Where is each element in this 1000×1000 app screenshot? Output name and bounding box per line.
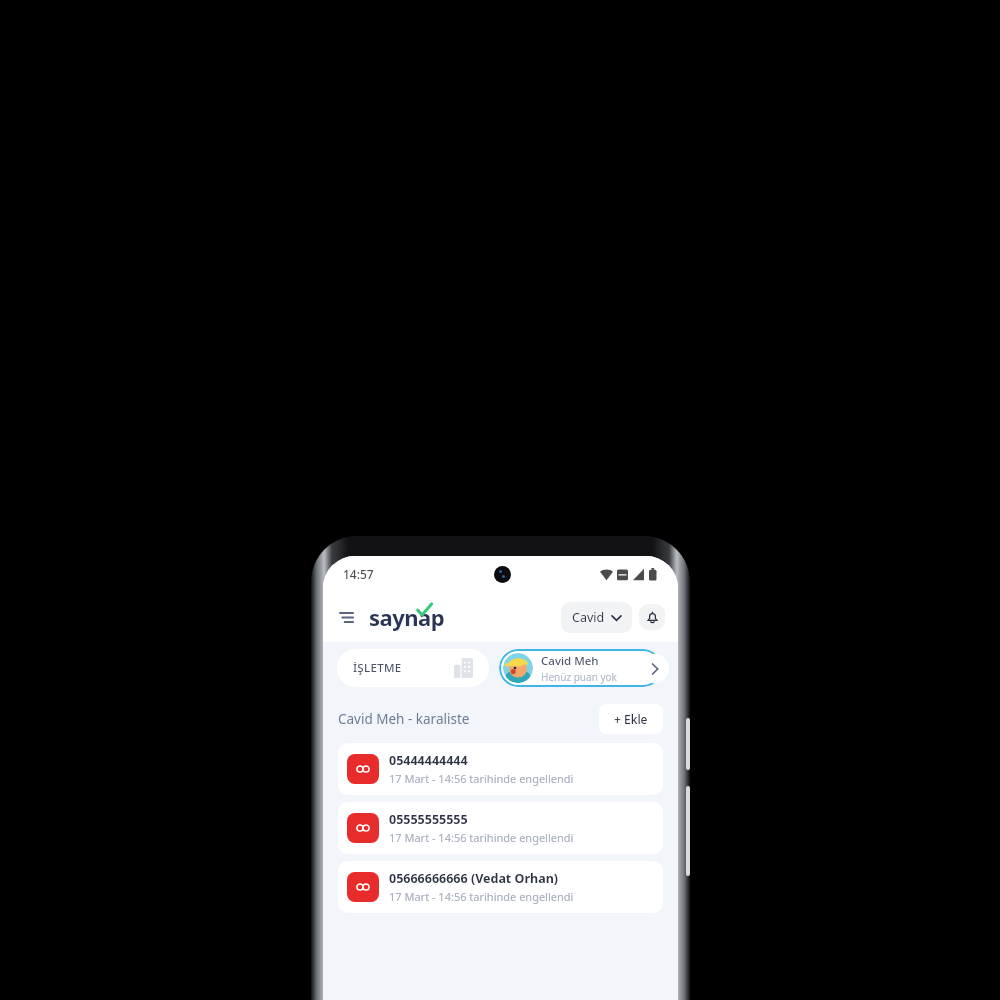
button[interactable]: İŞLETME	[337, 649, 489, 687]
staticText: 17 Mart - 14:56 tarihinde engellendi	[389, 889, 574, 904]
staticText: saynap	[369, 602, 445, 632]
button[interactable]: 05666666666 (Vedat Orhan)	[338, 861, 663, 913]
staticText: 05444444444	[389, 752, 468, 769]
staticText: 17 Mart - 14:56 tarihinde engellendi	[389, 771, 574, 786]
staticText: 17 Mart - 14:56 tarihinde engellendi	[389, 830, 574, 845]
button[interactable]: + Ekle	[599, 704, 663, 734]
button[interactable]: Menu	[336, 608, 357, 627]
staticText: 05555555555	[389, 811, 468, 828]
button[interactable]: Notifications	[639, 604, 665, 630]
staticText: 05666666666 (Vedat Orhan)	[389, 870, 558, 887]
staticText: Cavid Meh - karaliste	[338, 710, 470, 728]
staticText: 14:57	[343, 566, 374, 582]
button[interactable]: 05444444444	[338, 743, 663, 795]
button[interactable]: 05555555555	[338, 802, 663, 854]
staticText: Cavid Meh	[541, 653, 599, 669]
staticText: Cavid	[572, 609, 605, 626]
staticText: + Ekle	[614, 711, 648, 727]
button[interactable]: Cavid Meh	[499, 649, 662, 687]
staticText: Henüz puan yok	[541, 670, 617, 684]
button[interactable]: Cavid	[561, 602, 632, 633]
button[interactable]: Next	[640, 654, 669, 683]
staticText: İŞLETME	[353, 660, 402, 676]
